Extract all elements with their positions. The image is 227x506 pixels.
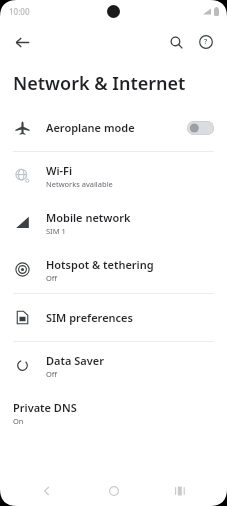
staticText: Network & Internet [13,71,186,96]
staticText: Hotspot & tethering [46,257,154,272]
button[interactable]: Search [161,27,191,57]
button[interactable]: Hotspot & tethering [0,246,227,293]
staticText: On [13,416,24,426]
button[interactable]: Back [5,25,39,59]
staticText: Private DNS [13,400,77,415]
button[interactable]: Private DNS [0,389,227,436]
button[interactable]: Wi-Fi [0,152,227,199]
staticText: Aeroplane mode [46,120,135,135]
button[interactable]: Recents [167,478,193,504]
button[interactable]: Mobile network [0,199,227,246]
button[interactable]: Data Saver [0,342,227,389]
staticText: Off [46,369,58,379]
staticText: Data Saver [46,353,104,368]
button[interactable]: Aeroplane mode [0,104,227,151]
staticText: Networks available [46,179,113,189]
staticText: SIM preferences [46,310,133,325]
button[interactable]: Aeroplane mode toggle [187,121,214,135]
button[interactable]: Help [191,27,221,57]
staticText: 10:00 [9,6,30,17]
staticText: Wi-Fi [46,163,73,178]
staticText: Mobile network [46,210,131,225]
button[interactable]: Home [101,478,127,504]
staticText: SIM 1 [46,226,66,236]
button[interactable]: Back [34,478,60,504]
button[interactable]: SIM preferences [0,294,227,341]
staticText: ? [204,37,208,47]
staticText: Off [46,273,58,283]
